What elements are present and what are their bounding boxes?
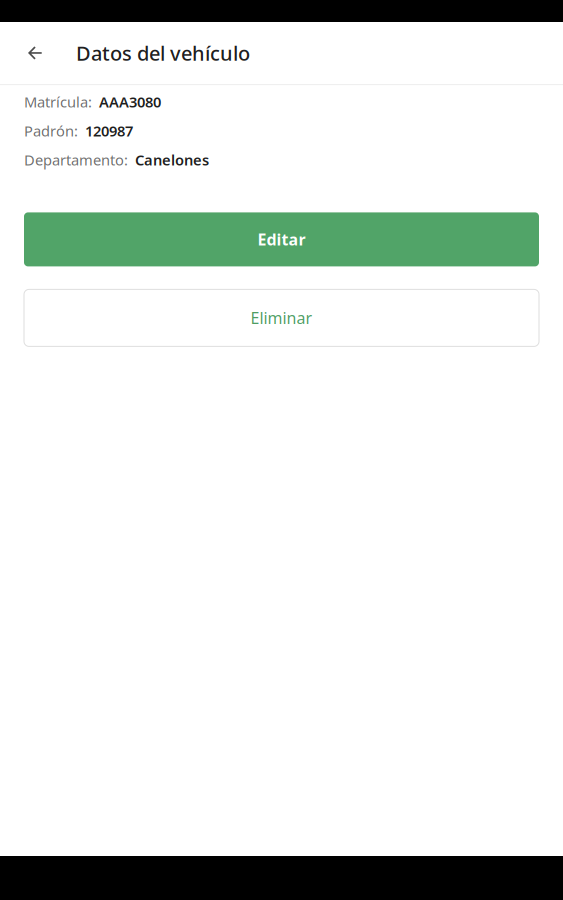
staticText: AAA3080 [99, 92, 161, 112]
button[interactable]: Eliminar [24, 289, 539, 346]
staticText: Editar [257, 229, 305, 250]
button[interactable]: Back [11, 29, 59, 77]
button[interactable]: Editar [24, 212, 539, 266]
staticText: Canelones [135, 150, 209, 170]
staticText: Padrón: [24, 121, 78, 141]
staticText: Departamento: [24, 150, 128, 170]
staticText: Matrícula: [24, 92, 92, 112]
staticText: Datos del vehículo [76, 40, 250, 66]
staticText: 120987 [85, 121, 133, 141]
staticText: Eliminar [250, 307, 312, 328]
